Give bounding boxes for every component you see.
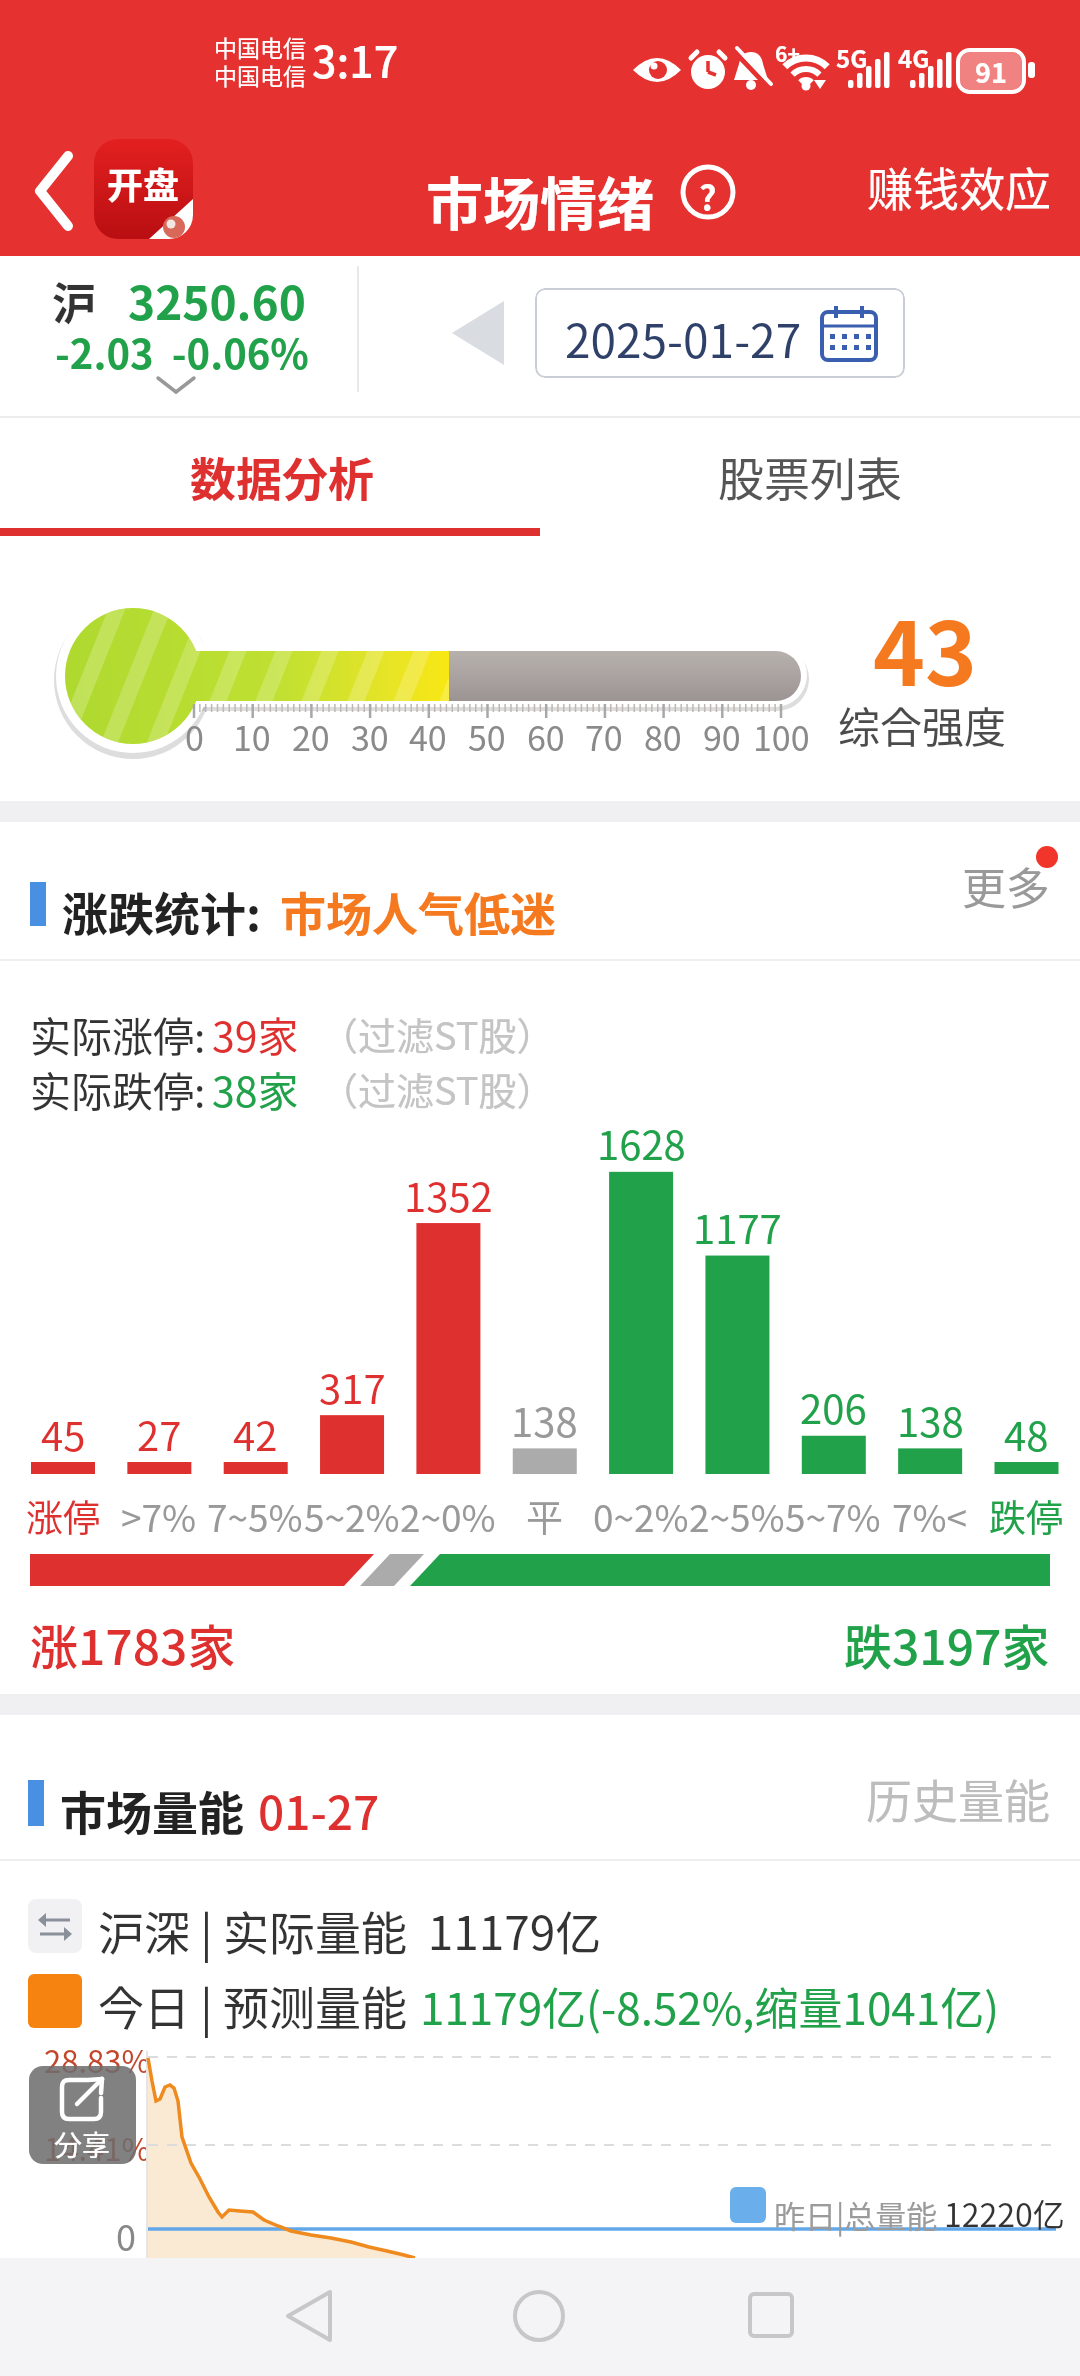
staticText: 91	[975, 52, 1007, 91]
staticText: 43	[873, 584, 977, 711]
staticText: 45	[41, 1405, 86, 1463]
staticText: 48	[1004, 1405, 1049, 1463]
staticText: 11179亿(-8.52%,缩量1041亿)	[420, 1974, 1000, 2038]
button[interactable]: ?	[680, 164, 736, 220]
staticText: 3250.60	[128, 267, 306, 334]
staticText: 市场量能	[60, 1777, 244, 1844]
staticText: 27	[137, 1405, 182, 1463]
staticText: 6+	[775, 38, 800, 68]
staticText: 涨1783家	[30, 1609, 236, 1679]
staticText: 317	[319, 1358, 386, 1416]
staticText: 股票列表	[718, 443, 902, 510]
staticText: 实际涨停:	[30, 1004, 206, 1063]
staticText: 市场情绪	[426, 159, 654, 242]
staticText: 综合强度	[838, 694, 1007, 755]
staticText: 昨日|总量能	[774, 2192, 938, 2237]
staticText: 1177	[693, 1198, 782, 1256]
staticText: 20	[292, 712, 330, 761]
staticText: （过滤ST股）	[320, 1006, 555, 1061]
staticText: 0	[116, 2209, 136, 2261]
staticText: 90	[703, 712, 741, 761]
staticText: （过滤ST股）	[320, 1061, 555, 1116]
staticText: 4G	[898, 40, 930, 75]
staticText: 14.41%	[44, 2125, 150, 2170]
staticText: 涨跌统计:	[62, 878, 261, 945]
button[interactable]: 更多	[890, 842, 1050, 930]
staticText: 3:17	[312, 28, 399, 90]
button[interactable]	[0, 256, 358, 416]
staticText: 历史量能	[866, 1765, 1050, 1832]
staticText: 沪深 | 实际量能 11179亿	[98, 1897, 602, 1964]
staticText: 100	[753, 712, 810, 761]
staticText: 10	[233, 712, 271, 761]
staticText: 2~0%	[400, 1489, 496, 1543]
staticText: 01-27	[258, 1777, 380, 1844]
button[interactable]: 历史量能	[860, 1753, 1050, 1843]
staticText: 今日 | 预测量能	[98, 1972, 418, 2039]
button[interactable]	[489, 2286, 589, 2346]
staticText: 5G	[836, 40, 868, 75]
button[interactable]	[721, 2286, 821, 2346]
button[interactable]: 开盘	[94, 139, 193, 239]
staticText: 138	[511, 1391, 578, 1449]
staticText: 1628	[597, 1114, 686, 1172]
staticText: 中国电信	[214, 58, 306, 91]
staticText: 39家	[212, 1004, 299, 1063]
staticText: 50	[468, 712, 506, 761]
staticText: 28.83%	[44, 2037, 150, 2082]
staticText: 平	[526, 1489, 563, 1543]
staticText: 2~5%	[689, 1489, 785, 1543]
staticText: 138	[897, 1391, 964, 1449]
staticText: 70	[585, 712, 623, 761]
staticText: 38家	[212, 1059, 299, 1118]
staticText: 开盘	[107, 157, 180, 209]
staticText: 涨停	[26, 1489, 100, 1543]
staticText: 5~2%	[304, 1489, 400, 1543]
staticText: 跌3197家	[844, 1609, 1050, 1679]
staticText: 7~5%	[207, 1489, 303, 1543]
staticText: 12220亿	[944, 2190, 1065, 2236]
staticText: ?	[699, 172, 717, 221]
staticText: 赚钱效应	[867, 153, 1051, 220]
staticText: 40	[409, 712, 447, 761]
staticText: 1352	[404, 1166, 493, 1224]
staticText: 跌停	[989, 1489, 1063, 1543]
staticText: 80	[644, 712, 682, 761]
staticText: 30	[351, 712, 389, 761]
staticText: 分享	[54, 2124, 111, 2164]
button[interactable]: 分享	[29, 2066, 136, 2164]
staticText: 数据分析	[190, 443, 374, 510]
staticText: 42	[233, 1405, 278, 1463]
staticText: 中国电信	[214, 30, 306, 63]
staticText: 更多	[962, 854, 1050, 918]
staticText: 7%<	[892, 1489, 968, 1543]
staticText: -2.03 -0.06%	[55, 323, 309, 381]
button[interactable]	[10, 135, 90, 235]
button[interactable]: 股票列表	[540, 416, 1080, 536]
staticText: 2025-01-27	[565, 305, 802, 372]
staticText: 206	[800, 1378, 867, 1436]
button[interactable]: 2025-01-27	[535, 288, 905, 378]
staticText: 实际跌停:	[30, 1059, 206, 1118]
staticText: 5~7%	[785, 1489, 881, 1543]
staticText: >7%	[121, 1489, 197, 1543]
staticText: 沪	[52, 269, 96, 333]
staticText: 0	[185, 712, 204, 761]
button[interactable]: 赚钱效应	[856, 151, 1062, 221]
button[interactable]	[260, 2288, 360, 2348]
staticText: 市场人气低迷	[280, 878, 556, 945]
staticText: 60	[527, 712, 565, 761]
staticText: 0~2%	[593, 1489, 689, 1543]
button[interactable]: 数据分析	[12, 416, 552, 536]
